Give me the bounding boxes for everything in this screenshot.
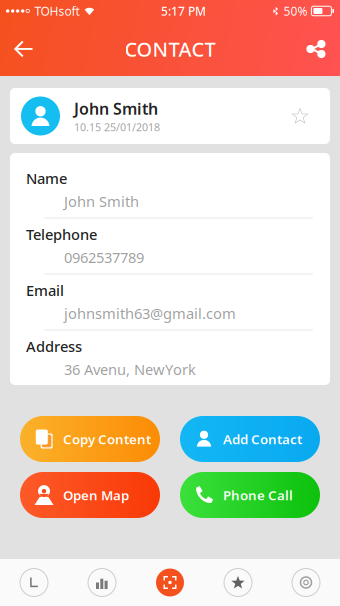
staticText: John Smith [64, 191, 139, 211]
staticText: 0962537789 [64, 247, 144, 267]
button[interactable]: Recent [0, 559, 68, 606]
staticText: Email [26, 280, 64, 300]
button[interactable]: Share [294, 27, 338, 71]
button[interactable]: Favorites [204, 559, 272, 606]
staticText: johnsmith63@gmail.com [64, 303, 236, 323]
button[interactable]: Add Contact [180, 416, 320, 462]
staticText: 36 Avenu, NewYork [64, 359, 196, 379]
staticText: Name [26, 168, 67, 188]
staticText: Phone Call [223, 486, 293, 504]
staticText: CONTACT [124, 36, 215, 62]
staticText: Add Contact [223, 430, 302, 448]
button[interactable]: Back [2, 27, 46, 71]
button[interactable]: Phone Call [180, 472, 320, 518]
staticText: John Smith [74, 98, 158, 119]
staticText: Address [26, 336, 82, 356]
staticText: Copy Content [63, 430, 151, 448]
staticText: 50% [283, 3, 307, 19]
button[interactable]: Copy Content [20, 416, 160, 462]
staticText: TOHsoft [34, 3, 79, 19]
button[interactable]: Settings [272, 559, 340, 606]
button[interactable]: John Smith [10, 88, 330, 144]
staticText: 5:17 PM [161, 3, 206, 19]
staticText: Open Map [63, 486, 129, 504]
button[interactable]: Scan [136, 559, 204, 606]
button[interactable]: Open Map [20, 472, 160, 518]
button[interactable]: Statistics [68, 559, 136, 606]
staticText: Telephone [26, 224, 97, 244]
staticText: 10.15 25/01/2018 [74, 120, 160, 134]
